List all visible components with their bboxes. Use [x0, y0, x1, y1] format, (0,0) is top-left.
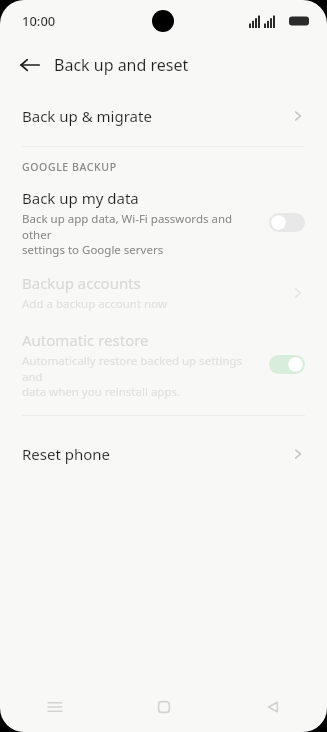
- button[interactable]: Home: [109, 682, 218, 732]
- button[interactable]: Backup accounts: [0, 271, 327, 314]
- staticText: Backup accounts: [22, 273, 141, 293]
- button[interactable]: Back up my data: [0, 186, 327, 259]
- button[interactable]: Automatic restore: [0, 328, 327, 401]
- button[interactable]: Back: [218, 682, 327, 732]
- button[interactable]: Reset phone: [0, 432, 327, 476]
- staticText: Reset phone: [22, 444, 291, 464]
- staticText: Back up & migrate: [22, 106, 291, 126]
- button[interactable]: Off: [269, 213, 305, 232]
- button[interactable]: Recents: [0, 682, 109, 732]
- staticText: GOOGLE BACKUP: [22, 160, 117, 174]
- staticText: Back up app data, Wi-Fi passwords and ot…: [22, 211, 259, 257]
- staticText: Automatically restore backed up settings…: [22, 353, 259, 399]
- staticText: Back up and reset: [54, 54, 189, 76]
- button[interactable]: Back up & migrate: [0, 94, 327, 138]
- staticText: Back up my data: [22, 188, 139, 208]
- button[interactable]: Back: [10, 45, 50, 85]
- staticText: Add a backup account now: [22, 296, 167, 312]
- button[interactable]: On: [269, 355, 305, 374]
- staticText: 10:00: [22, 12, 56, 30]
- staticText: Automatic restore: [22, 330, 149, 350]
